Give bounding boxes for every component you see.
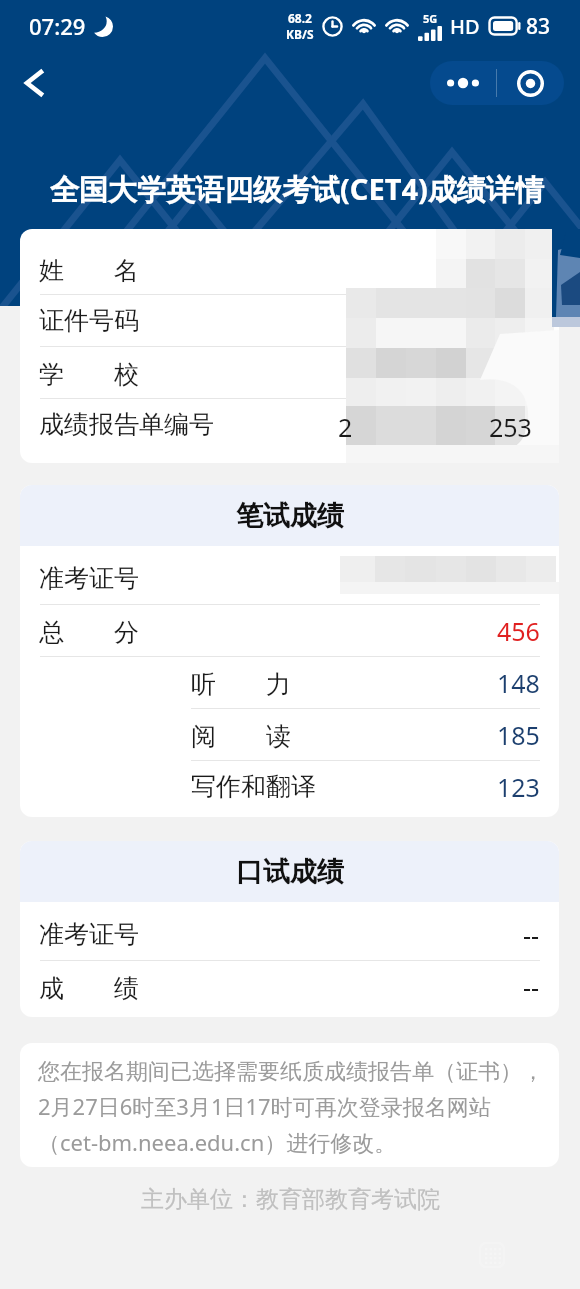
- staticText: 83: [526, 12, 551, 41]
- staticText: 总 分: [39, 614, 139, 648]
- staticText: 准考证号: [39, 563, 139, 594]
- staticText: --: [523, 970, 540, 1004]
- staticText: 学 校: [39, 356, 139, 390]
- staticText: 主办单位：教育部教育考试院: [141, 1185, 440, 1214]
- other: Close: [497, 70, 564, 97]
- staticText: 准考证号: [39, 919, 139, 950]
- staticText: 成 绩: [39, 970, 139, 1004]
- staticText: 全国大学英语四级考试(CET4)成绩详情: [50, 169, 544, 209]
- staticText: HD: [450, 13, 480, 40]
- staticText: 456: [497, 614, 540, 648]
- staticText: 5G: [423, 11, 438, 26]
- staticText: 阅 读: [191, 718, 291, 752]
- other: More: [430, 78, 496, 88]
- staticText: 68.2: [288, 10, 312, 26]
- staticText: 口试成绩: [236, 855, 344, 889]
- button[interactable]: More: [430, 61, 564, 105]
- staticText: --: [523, 918, 540, 952]
- staticText: 123: [497, 770, 540, 804]
- staticText: 您在报名期间已选择需要纸质成绩报告单（证书）， 2月27日6时至3月1日17时可…: [38, 1058, 545, 1158]
- staticText: 253: [489, 410, 532, 444]
- staticText: 听 力: [191, 666, 291, 700]
- staticText: KB/S: [286, 26, 314, 42]
- staticText: 写作和翻译: [191, 771, 316, 802]
- staticText: 2: [338, 410, 353, 444]
- button[interactable]: Back: [12, 61, 56, 105]
- staticText: 07:29: [29, 11, 86, 41]
- staticText: 姓 名: [39, 252, 139, 286]
- staticText: 185: [497, 718, 540, 752]
- staticText: 笔试成绩: [236, 499, 344, 533]
- staticText: 148: [497, 666, 540, 700]
- staticText: 成绩报告单编号: [39, 409, 214, 440]
- staticText: 证件号码: [39, 305, 139, 336]
